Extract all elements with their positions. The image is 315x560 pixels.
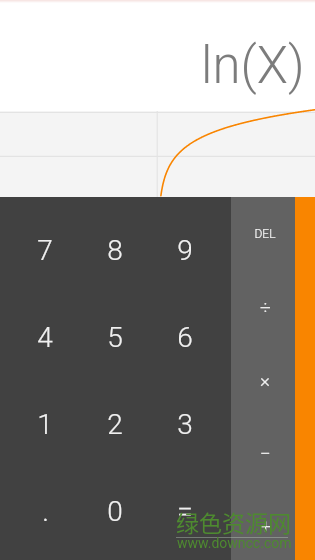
button[interactable]: 4 — [10, 294, 80, 381]
button[interactable]: 6 — [150, 294, 220, 381]
staticText: − — [260, 442, 271, 464]
button[interactable]: Divide — [231, 269, 295, 342]
staticText: 绿色资源网 — [176, 505, 291, 538]
button[interactable]: Delete — [231, 197, 295, 269]
staticText: 1 — [37, 408, 53, 441]
staticText: 6 — [177, 321, 193, 354]
button[interactable]: Minus — [231, 415, 295, 488]
staticText: 2 — [107, 408, 123, 441]
staticText: × — [260, 369, 270, 391]
staticText: 5 — [107, 321, 123, 354]
button[interactable]: 3 — [150, 381, 220, 468]
staticText: + — [260, 515, 271, 537]
button[interactable]: 7 — [10, 206, 80, 294]
staticText: ln(X) — [201, 36, 305, 96]
staticText: 4 — [37, 321, 53, 354]
button[interactable]: 9 — [150, 206, 220, 294]
staticText: = — [177, 495, 193, 528]
staticText: 7 — [37, 234, 53, 267]
staticText: DEL — [254, 227, 276, 241]
staticText: . — [42, 495, 49, 528]
staticText: 0 — [107, 495, 123, 528]
button[interactable]: Multiply — [231, 342, 295, 415]
staticText: 8 — [107, 234, 123, 267]
staticText: ÷ — [260, 296, 271, 318]
staticText: 3 — [177, 408, 193, 441]
button[interactable]: = — [150, 468, 220, 555]
button[interactable]: Plus — [231, 488, 295, 560]
button[interactable]: 0 — [80, 468, 150, 555]
button[interactable]: 1 — [10, 381, 80, 468]
staticText: 9 — [177, 234, 193, 267]
button[interactable]: . — [10, 468, 80, 555]
button[interactable]: 2 — [80, 381, 150, 468]
button[interactable]: 8 — [80, 206, 150, 294]
staticText: www.downcc.com — [177, 535, 292, 551]
button[interactable]: 5 — [80, 294, 150, 381]
